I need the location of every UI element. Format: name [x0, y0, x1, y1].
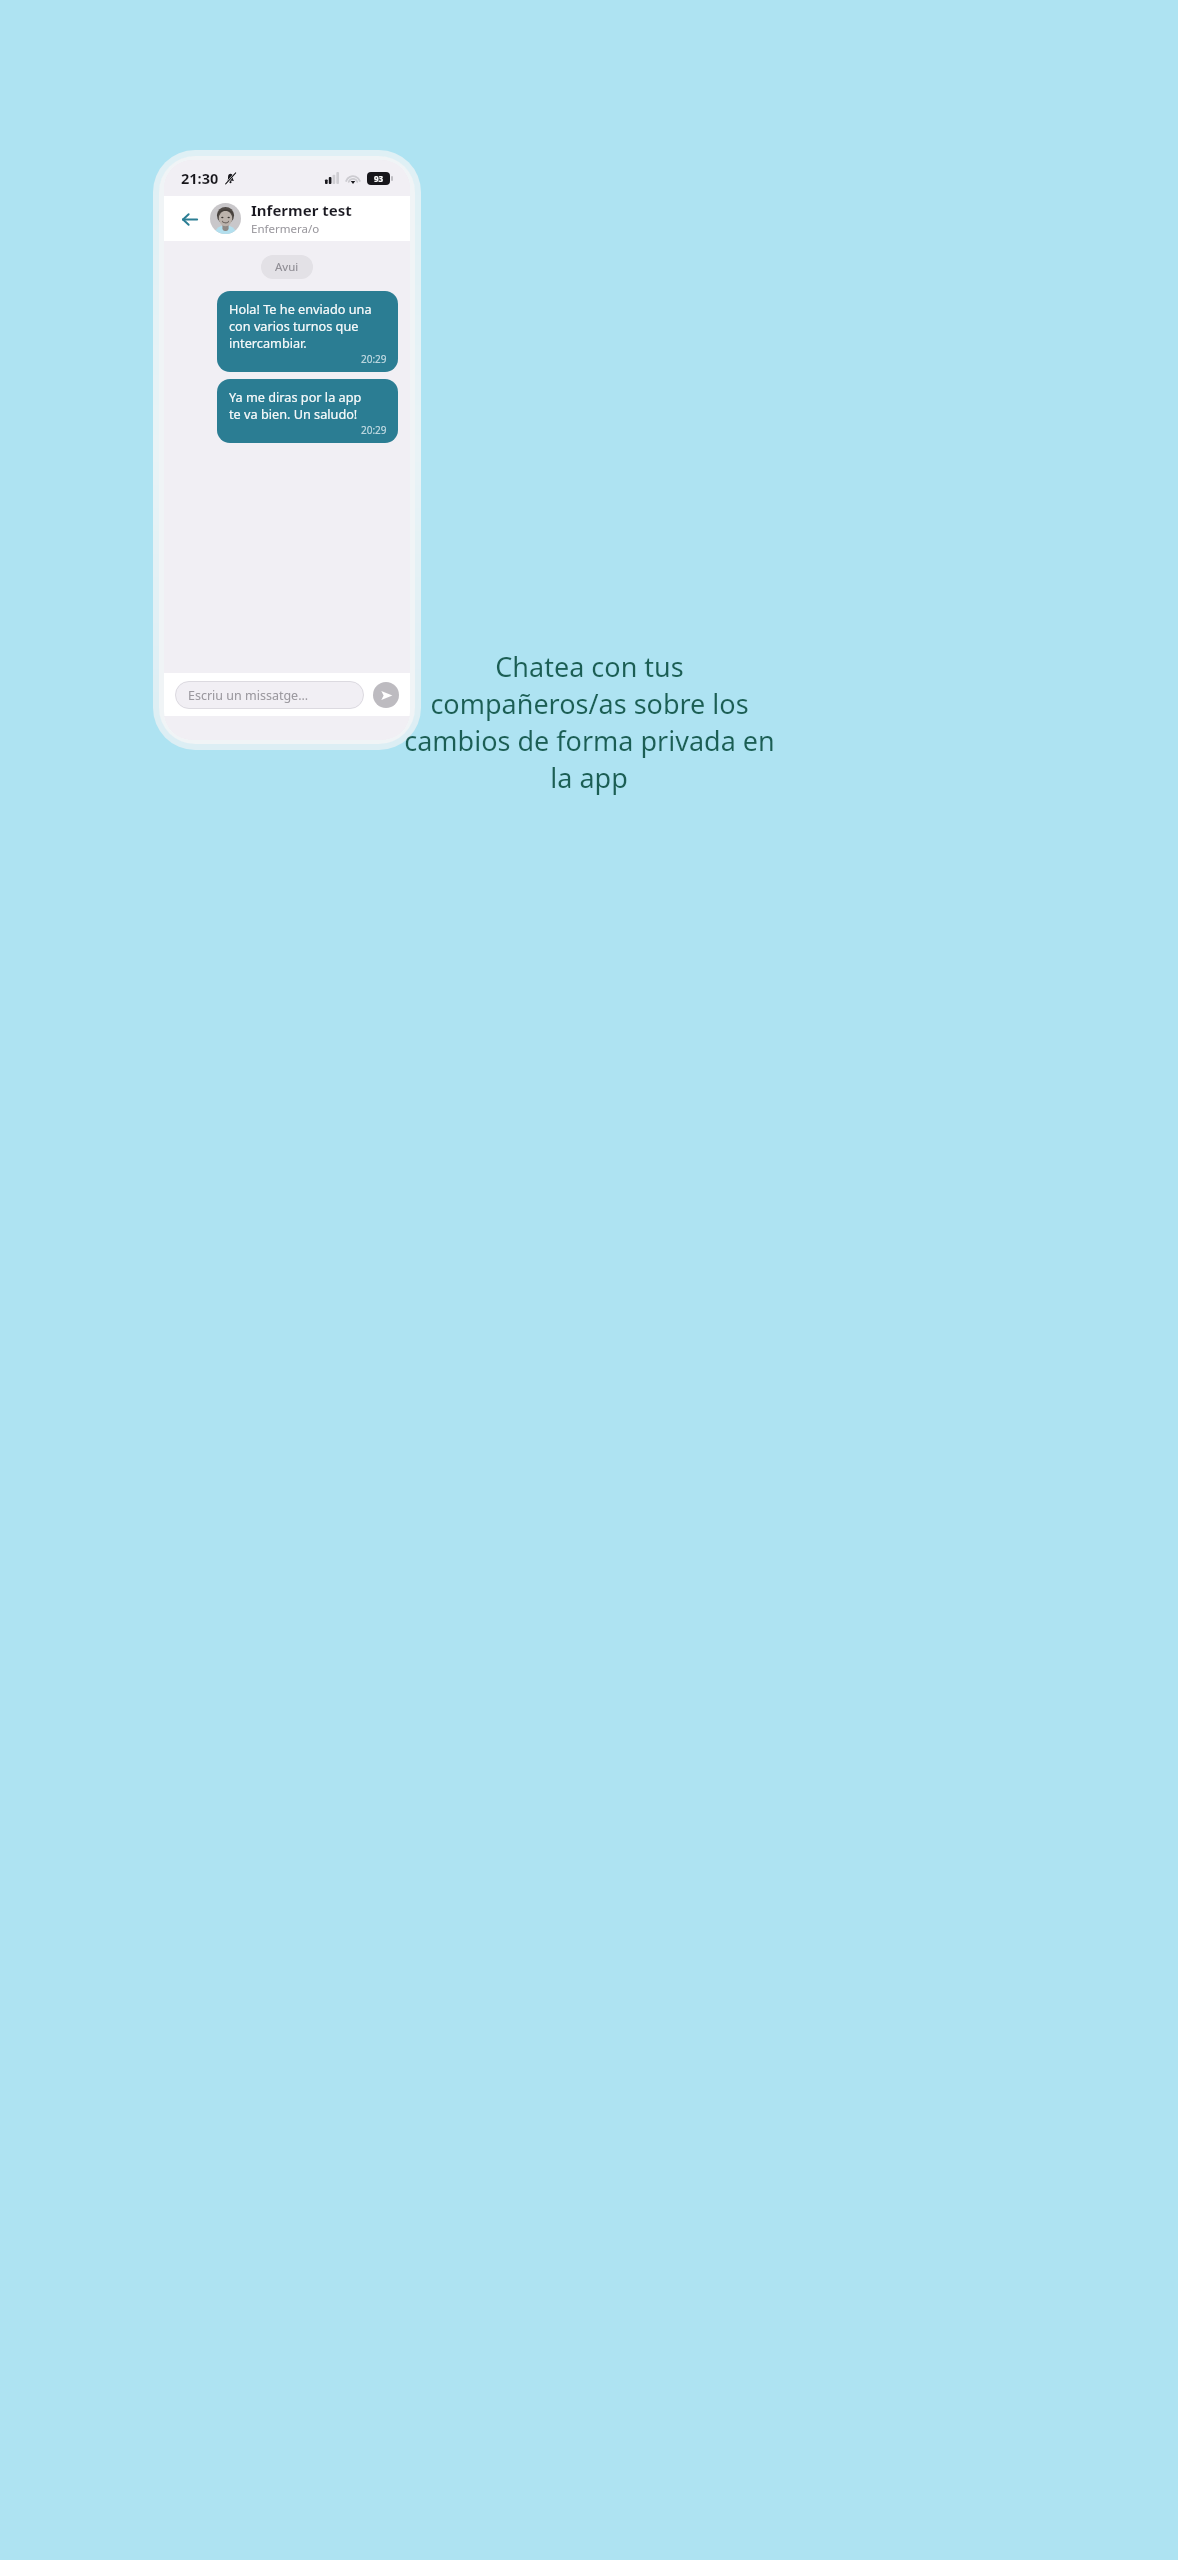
staticText: 20:29 [361, 352, 387, 366]
button[interactable]: Infermer test [251, 200, 352, 237]
staticText: 21:30 [181, 168, 219, 188]
staticText: cambios de forma privada en [404, 722, 775, 759]
button[interactable]: Escriu un missatge... [175, 681, 364, 709]
staticText: Hola! Te he enviado una propuesta [229, 300, 387, 317]
staticText: compañeros/as sobre los [430, 685, 749, 722]
button[interactable]: Profile photo [210, 203, 241, 234]
staticText: Ya me diras por la app cuál de ellos [229, 388, 387, 405]
staticText: Enfermera/o [251, 221, 320, 237]
staticText: Escriu un missatge... [188, 687, 309, 704]
staticText: la app [550, 759, 628, 796]
staticText: Infermer test [251, 200, 352, 220]
staticText: 93 [374, 173, 384, 184]
staticText: te va bien. Un saludo! [229, 405, 358, 422]
staticText: Avui [275, 259, 299, 275]
button[interactable]: Send [373, 682, 399, 708]
button[interactable]: Avui [261, 255, 313, 279]
button[interactable]: Back [174, 204, 204, 234]
staticText: 20:29 [361, 423, 387, 437]
staticText: intercambiar. [229, 334, 307, 351]
button[interactable]: Hola! Te he enviado una propuesta [217, 291, 398, 372]
button[interactable]: Ya me diras por la app cuál de ellos [217, 379, 398, 443]
staticText: con varios turnos que podríamos [229, 317, 387, 334]
staticText: Chatea con tus [495, 648, 684, 685]
